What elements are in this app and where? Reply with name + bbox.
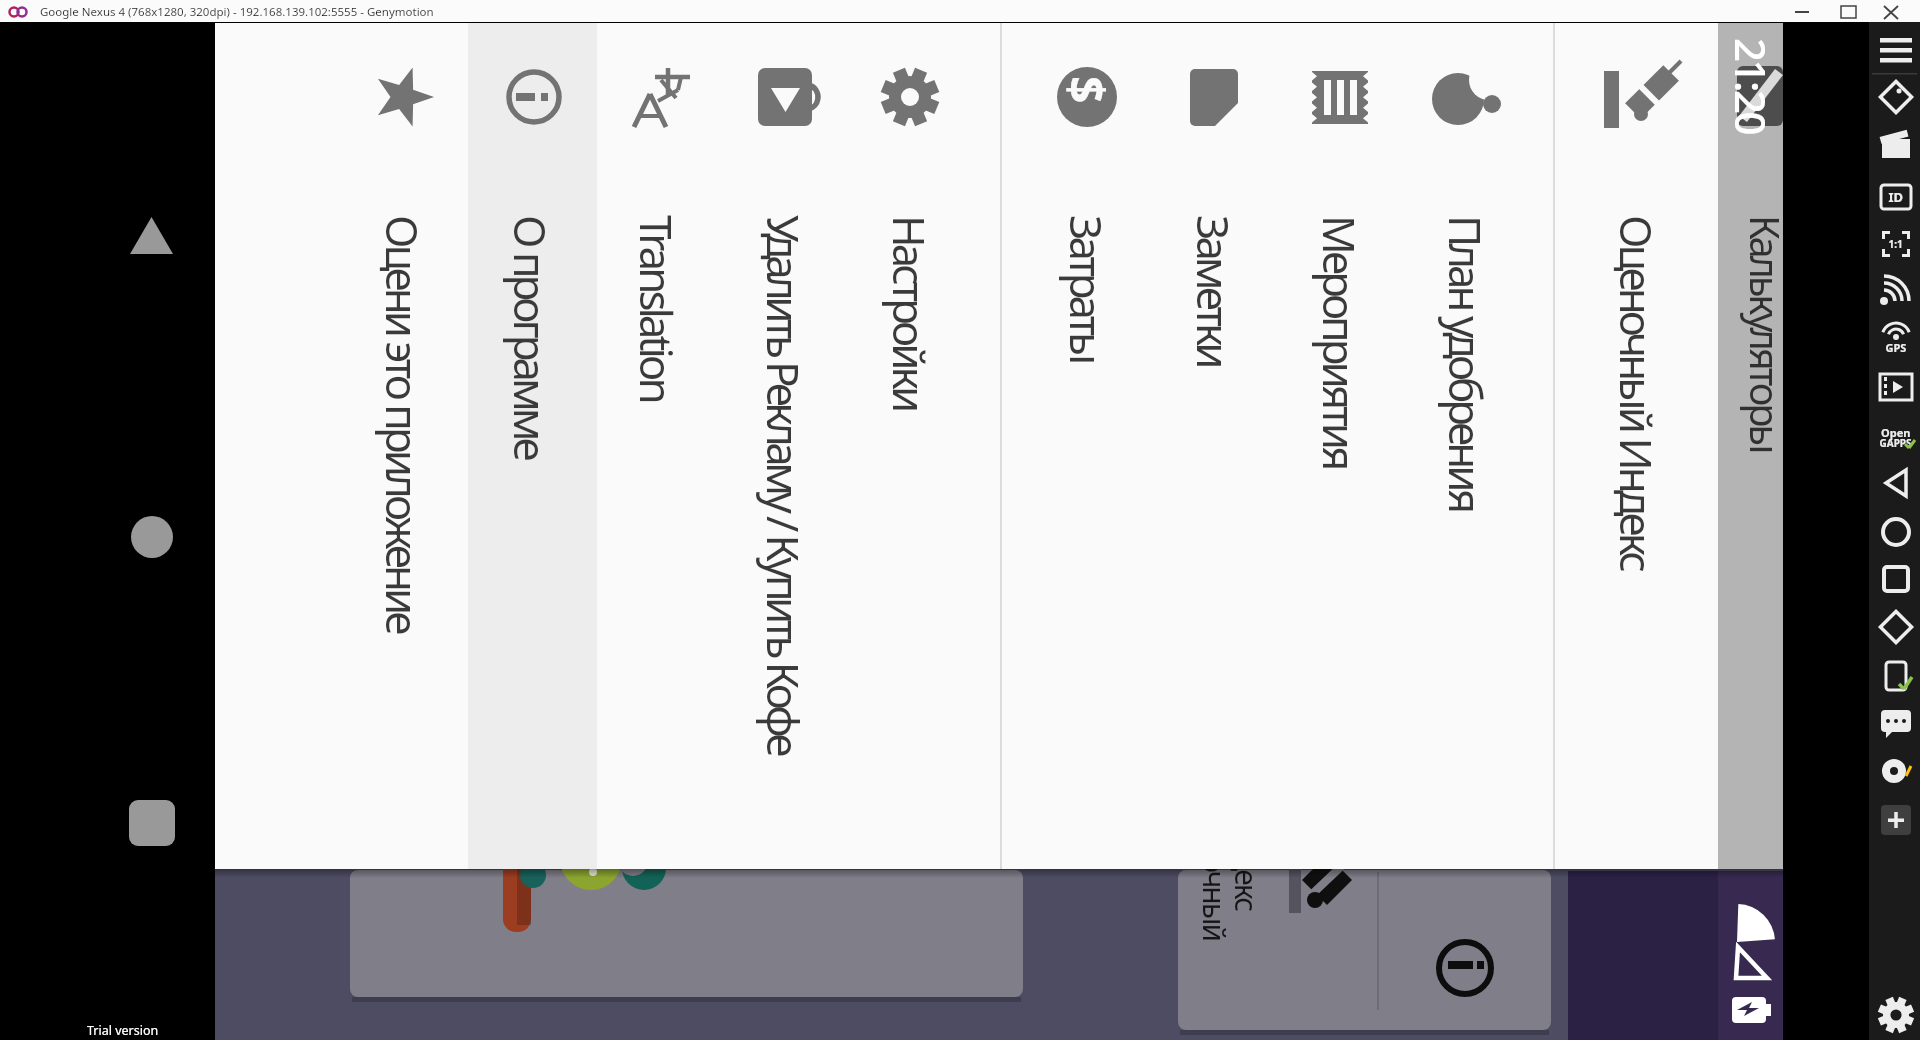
button[interactable] — [1725, 900, 1775, 945]
button[interactable] — [1833, 0, 1865, 22]
button[interactable] — [1872, 749, 1918, 793]
button[interactable] — [1872, 653, 1918, 697]
button[interactable] — [1872, 700, 1918, 744]
button[interactable] — [118, 790, 186, 852]
button[interactable] — [350, 872, 1023, 997]
button[interactable] — [1277, 23, 1404, 871]
button[interactable] — [1725, 945, 1775, 983]
button[interactable] — [1872, 268, 1918, 312]
button[interactable] — [118, 205, 186, 267]
button[interactable] — [1872, 174, 1918, 218]
button[interactable] — [1872, 124, 1918, 168]
button[interactable] — [847, 23, 974, 871]
button[interactable] — [1872, 993, 1918, 1037]
button[interactable] — [1403, 23, 1530, 871]
button[interactable] — [1872, 798, 1918, 842]
button[interactable] — [1786, 0, 1818, 22]
button[interactable] — [1872, 75, 1918, 119]
button[interactable] — [594, 23, 721, 871]
button[interactable] — [1872, 557, 1918, 601]
button[interactable] — [1178, 872, 1551, 1030]
button[interactable] — [118, 504, 186, 566]
button[interactable] — [468, 23, 595, 871]
button[interactable] — [1701, 23, 1783, 871]
button[interactable] — [1878, 0, 1910, 22]
button[interactable] — [1151, 23, 1278, 871]
button[interactable] — [1872, 461, 1918, 505]
button[interactable] — [1725, 993, 1775, 1027]
button[interactable] — [1024, 23, 1151, 871]
button[interactable] — [1872, 510, 1918, 554]
button[interactable] — [1872, 605, 1918, 649]
button[interactable] — [1872, 221, 1918, 265]
button[interactable] — [721, 23, 848, 871]
button[interactable] — [1872, 365, 1918, 409]
button[interactable] — [340, 23, 467, 871]
button[interactable] — [1872, 25, 1918, 69]
button[interactable] — [1872, 317, 1918, 361]
button[interactable] — [1574, 23, 1701, 871]
button[interactable] — [1872, 412, 1918, 456]
